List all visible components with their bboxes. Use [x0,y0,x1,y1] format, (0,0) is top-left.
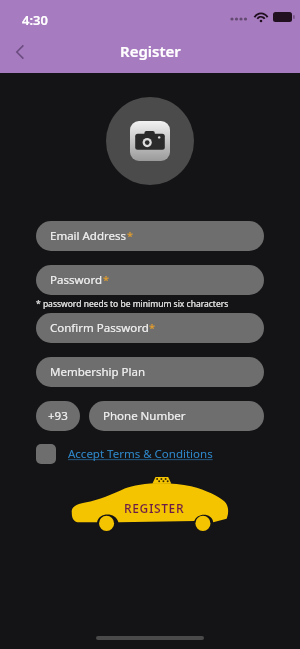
button[interactable]: Phone Number [89,401,264,431]
button[interactable]: Confirm Password [36,313,264,343]
staticText: * [103,272,110,287]
staticText: Phone Number [103,408,186,424]
button[interactable]: Password [36,265,264,295]
staticText: Password [50,272,103,288]
staticText: * [149,320,156,335]
button[interactable]: REGISTER [71,477,229,535]
button[interactable]: Accept terms checkbox [36,444,56,464]
staticText: Register [120,41,181,61]
button[interactable]: Membership Plan [36,357,264,387]
button[interactable]: Accept Terms & Conditions [68,446,213,462]
staticText: +93 [48,408,68,424]
button[interactable]: Add photo [106,97,194,185]
staticText: 4:30 [22,11,48,29]
button[interactable]: +93 [36,401,80,431]
staticText: REGISTER [124,500,185,516]
staticText: * [127,228,134,243]
staticText: * password needs to be minimum six chara… [36,298,229,310]
staticText: Confirm Password [50,320,149,336]
staticText: Email Address [50,228,127,244]
button[interactable]: Email Address [36,221,264,251]
staticText: Membership Plan [50,364,146,380]
button[interactable]: Back [6,37,36,67]
